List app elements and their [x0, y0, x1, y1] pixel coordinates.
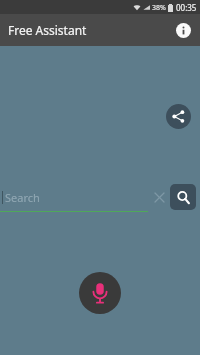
- button[interactable]: Voice input: [79, 272, 121, 314]
- button[interactable]: Search: [0, 182, 148, 212]
- staticText: Search: [5, 190, 40, 205]
- staticText: Free Assistant: [8, 22, 87, 38]
- button[interactable]: Share: [166, 104, 191, 129]
- button[interactable]: Info: [173, 20, 193, 40]
- staticText: 38%: [152, 3, 166, 13]
- button[interactable]: Clear: [148, 186, 170, 208]
- staticText: 00:35: [176, 2, 197, 13]
- button[interactable]: Search: [170, 184, 196, 210]
